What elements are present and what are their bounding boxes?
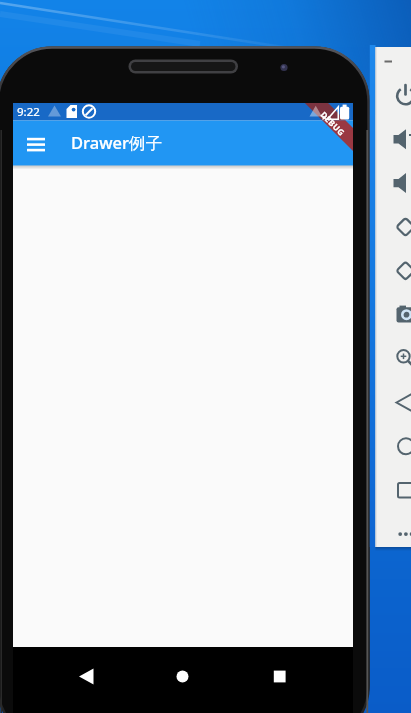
staticText: Drawer例子 [71,131,162,154]
staticText: DEBUG [318,109,347,138]
staticText: 9:22 [17,104,40,120]
